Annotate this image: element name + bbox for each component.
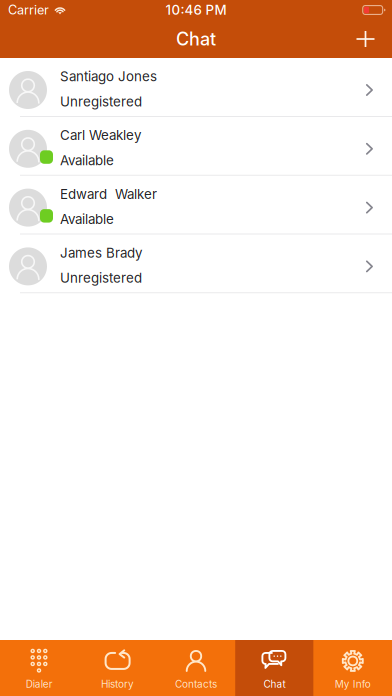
button[interactable]: Dialer — [0, 640, 78, 696]
button[interactable]: Carl Weakley — [0, 117, 392, 175]
button[interactable]: My Info — [314, 640, 392, 696]
staticText: Unregistered — [60, 93, 142, 110]
staticText: Santiago Jones — [60, 68, 157, 84]
staticText: Edward Walker — [60, 186, 157, 202]
staticText: Unregistered — [60, 270, 142, 286]
button[interactable]: James Brady — [0, 234, 392, 292]
staticText: James Brady — [60, 245, 142, 261]
staticText: Chat — [263, 678, 285, 690]
staticText: Available — [60, 211, 114, 227]
staticText: Carrier — [8, 2, 49, 18]
button[interactable]: Chat — [235, 640, 314, 696]
staticText: 10:46 PM — [165, 2, 226, 18]
staticText: Carl Weakley — [60, 127, 141, 143]
staticText: History — [101, 678, 134, 690]
button[interactable]: New chat — [344, 20, 392, 57]
button[interactable]: Santiago Jones — [0, 58, 392, 116]
staticText: Chat — [176, 28, 216, 50]
button[interactable]: History — [78, 640, 157, 696]
staticText: Available — [60, 152, 114, 168]
button[interactable]: Edward Walker — [0, 176, 392, 234]
staticText: Dialer — [26, 678, 53, 690]
staticText: My Info — [335, 678, 371, 690]
button[interactable]: Contacts — [157, 640, 235, 696]
staticText: Contacts — [175, 678, 217, 690]
